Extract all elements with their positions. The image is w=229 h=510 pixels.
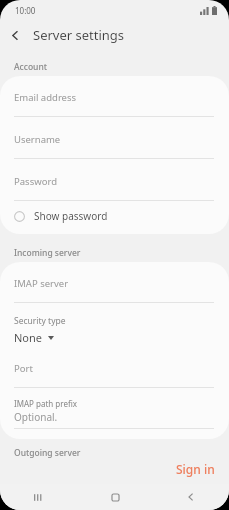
staticText: Show password (34, 209, 108, 223)
button[interactable]: Back (153, 484, 229, 510)
button[interactable]: None (0, 327, 64, 348)
staticText: None (14, 330, 43, 345)
staticText: Optional. (14, 410, 58, 424)
staticText: Security type (14, 315, 66, 327)
staticText: Port (14, 362, 33, 375)
button[interactable]: Home (77, 484, 153, 510)
staticText: Account (14, 61, 48, 73)
button[interactable]: Back (0, 20, 30, 50)
button[interactable]: Recents (0, 484, 77, 510)
button[interactable]: Show password (0, 201, 229, 231)
staticText: 10:00 (15, 5, 36, 16)
staticText: Outgoing server (14, 447, 81, 459)
staticText: Incoming server (14, 247, 81, 259)
staticText: Username (14, 133, 61, 146)
staticText: IMAP server (14, 277, 69, 290)
staticText: Server settings (33, 26, 125, 44)
staticText: Password (14, 175, 57, 188)
staticText: Sign in (176, 461, 215, 477)
staticText: Email address (14, 91, 77, 104)
button[interactable]: Sign in (162, 456, 229, 482)
staticText: IMAP path prefix (14, 398, 77, 409)
